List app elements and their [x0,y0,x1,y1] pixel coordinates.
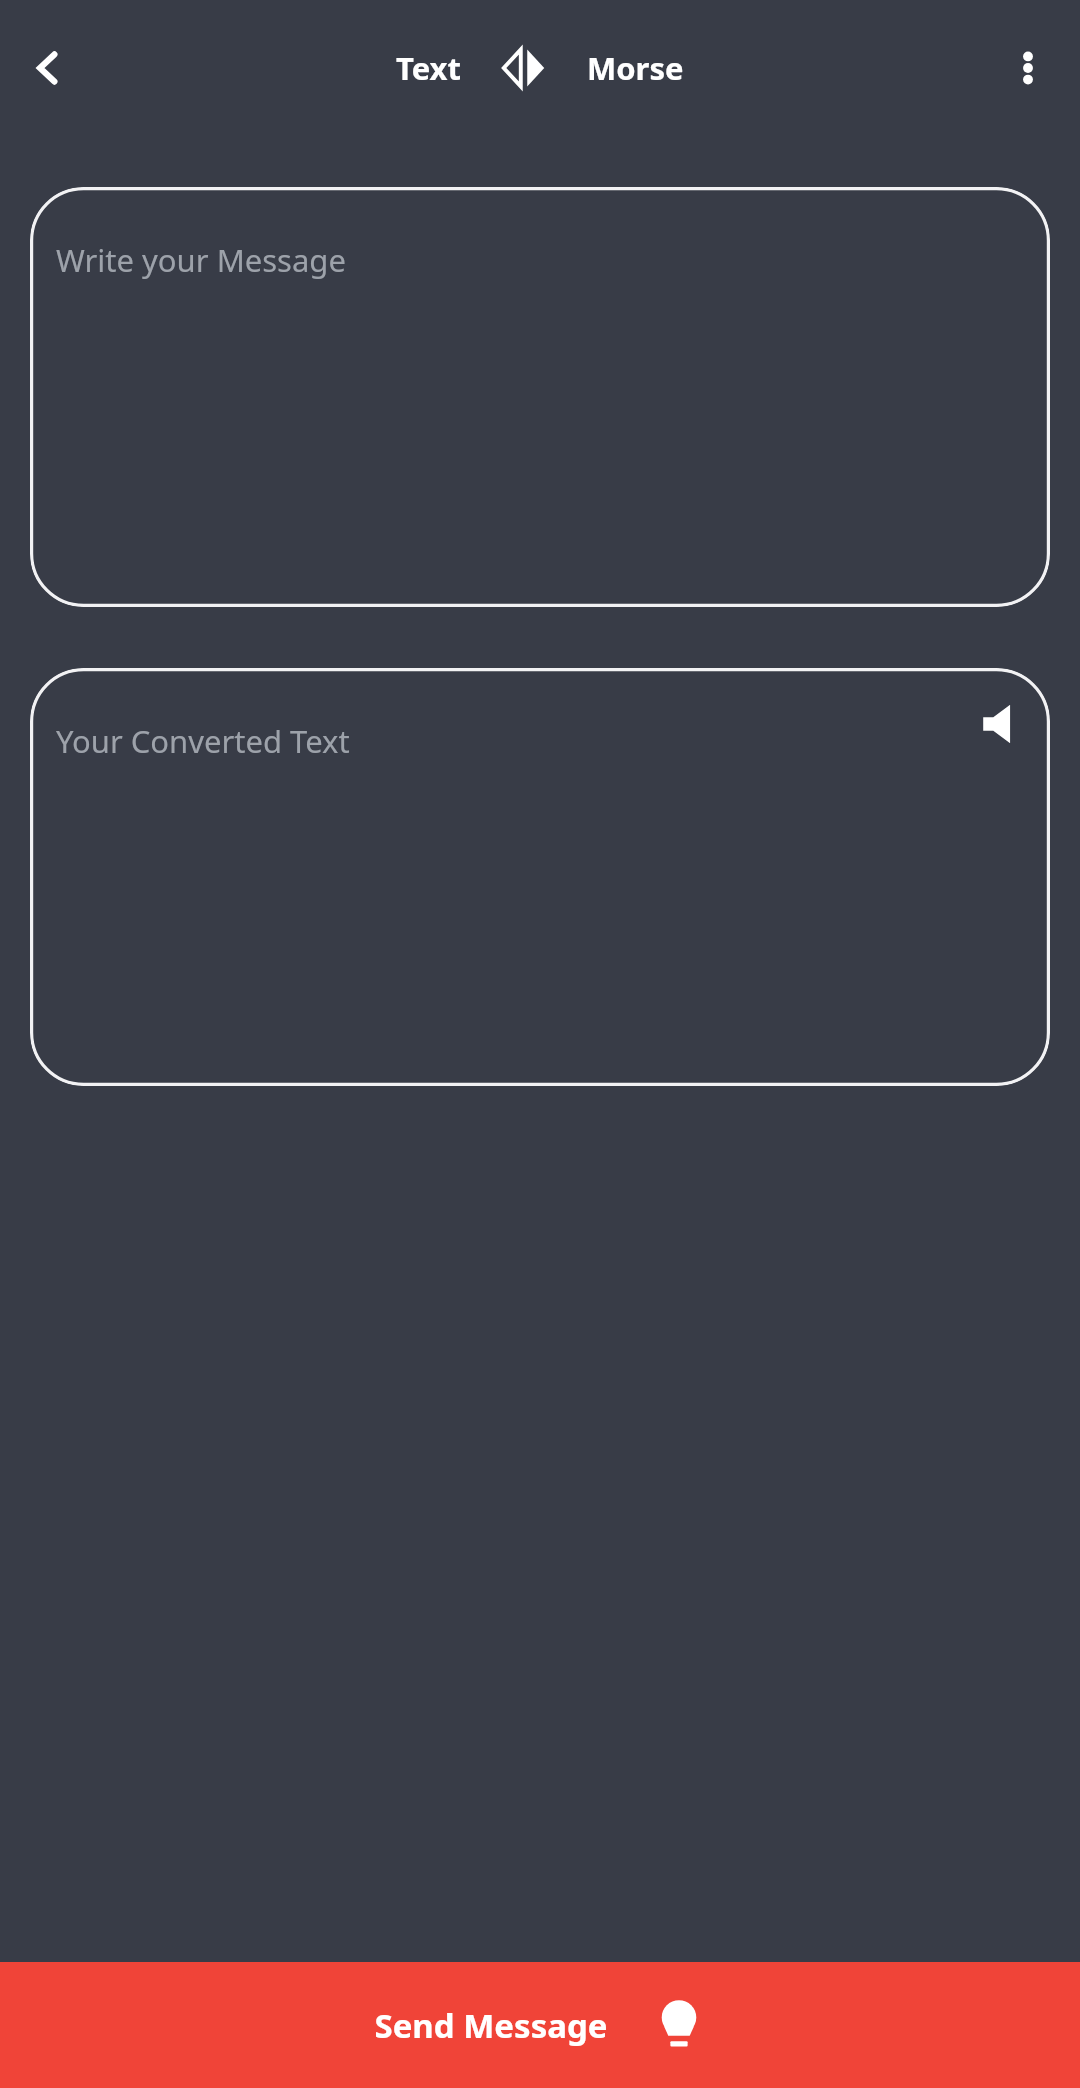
button[interactable]: Write your Message [30,187,1050,607]
button[interactable]: Text [386,41,471,95]
button[interactable]: Swap conversion direction [493,37,555,99]
button[interactable]: Morse [577,41,694,95]
button[interactable]: Back [12,32,84,104]
button[interactable]: Your Converted Text [30,668,1050,1086]
button[interactable]: Send Message [0,1962,1080,2088]
staticText: Morse [587,47,684,89]
staticText: Send Message [374,2003,608,2048]
staticText: Text [396,47,461,89]
staticText: Your Converted Text [56,720,350,762]
staticText: Write your Message [56,239,346,281]
button[interactable]: Play sound [964,688,1036,760]
button[interactable]: More options [990,30,1066,106]
